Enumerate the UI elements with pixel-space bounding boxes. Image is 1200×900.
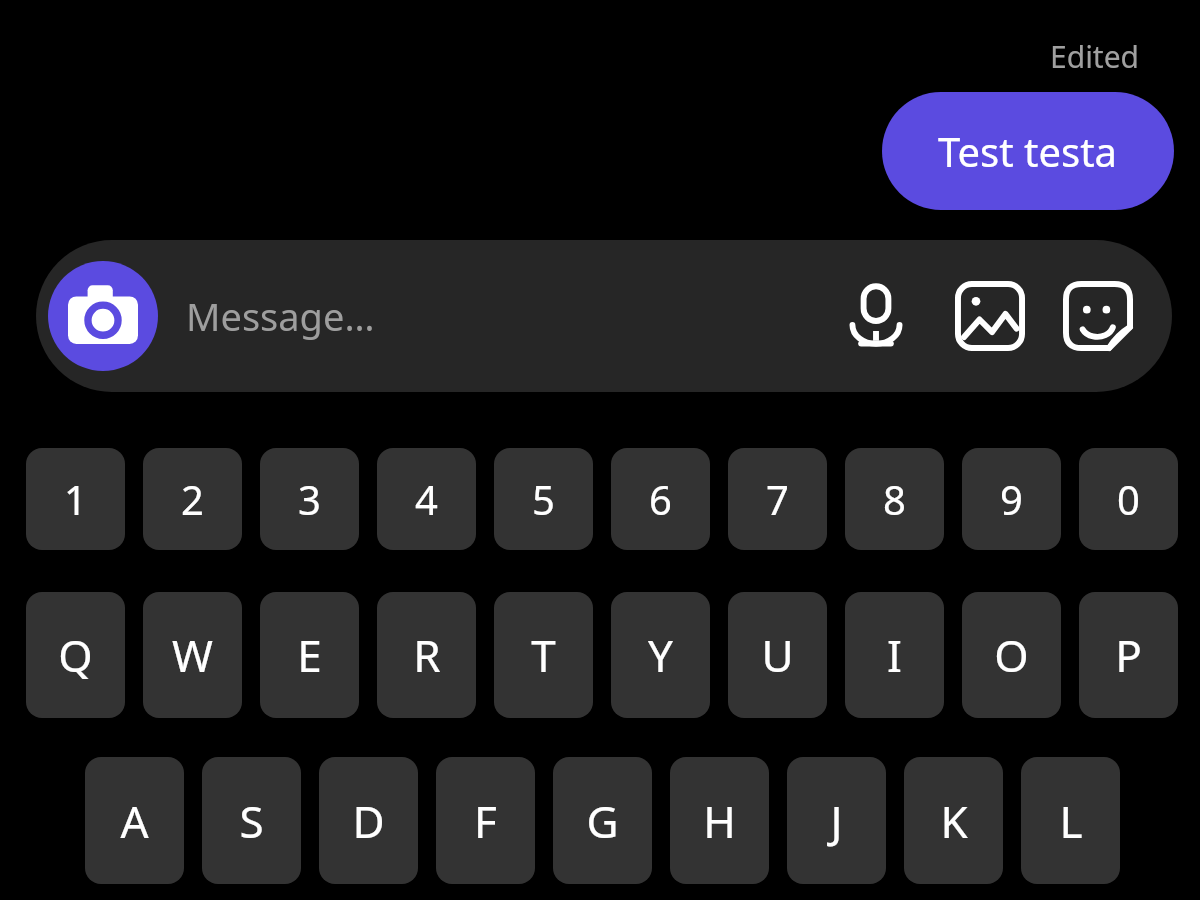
staticText: D (352, 791, 385, 851)
button[interactable]: L (1021, 757, 1120, 884)
staticText: 0 (1117, 472, 1140, 526)
staticText: A (120, 791, 149, 851)
button[interactable]: 2 (143, 448, 242, 550)
button[interactable]: A (85, 757, 184, 884)
button[interactable]: I (845, 592, 944, 718)
button[interactable]: 7 (728, 448, 827, 550)
staticText: G (586, 791, 619, 851)
staticText: 9 (1000, 472, 1023, 526)
staticText: S (239, 791, 264, 851)
button[interactable]: Voice message (826, 266, 926, 366)
staticText: U (761, 625, 794, 685)
button[interactable]: J (787, 757, 886, 884)
button[interactable]: Gallery (940, 266, 1040, 366)
staticText: P (1115, 625, 1142, 685)
button[interactable]: 8 (845, 448, 944, 550)
staticText: T (531, 625, 556, 685)
button[interactable]: P (1079, 592, 1178, 718)
button[interactable]: H (670, 757, 769, 884)
staticText: 6 (649, 472, 672, 526)
button[interactable]: F (436, 757, 535, 884)
button[interactable]: O (962, 592, 1061, 718)
staticText: F (474, 791, 497, 851)
staticText: J (830, 791, 843, 851)
button[interactable]: 9 (962, 448, 1061, 550)
staticText: 2 (181, 472, 204, 526)
staticText: W (172, 625, 213, 685)
staticText: 5 (532, 472, 555, 526)
staticText: 1 (64, 472, 87, 526)
staticText: Message… (186, 290, 375, 342)
staticText: E (297, 625, 322, 685)
button[interactable]: D (319, 757, 418, 884)
staticText: 8 (883, 472, 906, 526)
staticText: I (887, 625, 902, 685)
button[interactable]: U (728, 592, 827, 718)
button[interactable]: 1 (26, 448, 125, 550)
staticText: R (413, 625, 441, 685)
staticText: Edited (1050, 36, 1140, 77)
button[interactable]: Test testa (882, 92, 1174, 210)
button[interactable]: K (904, 757, 1003, 884)
staticText: O (994, 625, 1029, 685)
button[interactable]: E (260, 592, 359, 718)
button[interactable]: S (202, 757, 301, 884)
button[interactable]: R (377, 592, 476, 718)
button[interactable]: Message… (186, 240, 786, 392)
button[interactable]: 4 (377, 448, 476, 550)
staticText: 3 (298, 472, 321, 526)
staticText: Y (648, 625, 673, 685)
button[interactable]: Q (26, 592, 125, 718)
button[interactable]: Camera (48, 261, 158, 371)
button[interactable]: 0 (1079, 448, 1178, 550)
button[interactable]: G (553, 757, 652, 884)
button[interactable]: 3 (260, 448, 359, 550)
button[interactable]: Y (611, 592, 710, 718)
staticText: H (703, 791, 736, 851)
staticText: L (1059, 791, 1083, 851)
staticText: Test testa (938, 124, 1118, 178)
button[interactable]: T (494, 592, 593, 718)
staticText: 4 (415, 472, 438, 526)
staticText: K (940, 791, 968, 851)
button[interactable]: Stickers (1048, 266, 1148, 366)
staticText: 7 (766, 472, 789, 526)
staticText: Q (58, 625, 93, 685)
button[interactable]: 5 (494, 448, 593, 550)
button[interactable]: W (143, 592, 242, 718)
button[interactable]: 6 (611, 448, 710, 550)
